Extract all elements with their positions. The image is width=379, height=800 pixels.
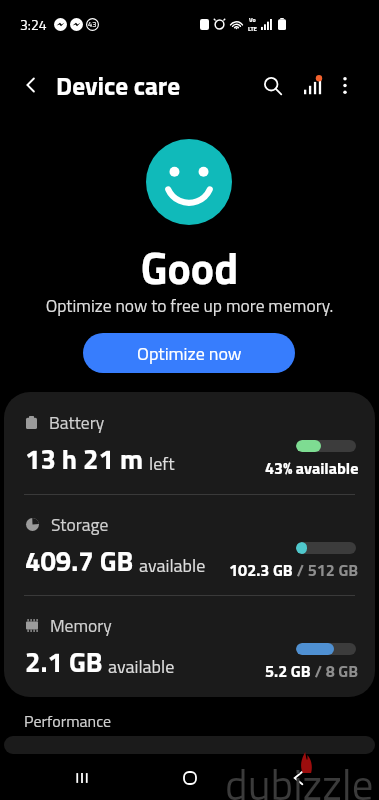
staticText: / 8 GB	[311, 659, 359, 684]
button[interactable]: Recent apps	[60, 756, 104, 800]
staticText: 3:24	[20, 14, 47, 35]
button[interactable]: Memory	[4, 595, 375, 696]
button[interactable]: Battery	[4, 392, 375, 493]
staticText: 409.7 GB	[25, 540, 134, 582]
staticText: 2.1 GB	[25, 641, 103, 683]
button[interactable]: More options	[328, 69, 361, 102]
button[interactable]: Navigate up	[18, 72, 44, 98]
staticText: 102.3 GB	[229, 558, 293, 583]
button[interactable]: Search	[256, 69, 289, 102]
staticText: Vo	[249, 15, 256, 24]
staticText: available	[139, 552, 206, 579]
button[interactable]: Optimize now	[83, 333, 295, 373]
staticText: Memory	[50, 612, 112, 639]
staticText: Optimize now to free up more memory.	[0, 292, 379, 319]
staticText: 43% available	[265, 456, 359, 481]
staticText: 13 h 21 m	[25, 438, 144, 480]
staticText: left	[149, 450, 175, 477]
button[interactable]: Storage	[4, 494, 375, 595]
button[interactable]: Back	[276, 756, 320, 800]
staticText: Device care	[56, 66, 181, 104]
staticText: dubizzle	[225, 751, 374, 800]
staticText: available	[108, 653, 175, 680]
staticText: / 512 GB	[293, 558, 359, 583]
staticText: Performance	[24, 709, 112, 733]
staticText: Storage	[51, 511, 109, 538]
staticText: LTE	[248, 24, 257, 33]
staticText: Good	[0, 234, 379, 301]
staticText: 43	[88, 19, 97, 30]
staticText: Optimize now	[137, 340, 242, 367]
button[interactable]: Home	[168, 756, 212, 800]
staticText: Battery	[49, 409, 105, 436]
button[interactable]: Usage statistics	[296, 69, 329, 102]
staticText: 5.2 GB	[265, 659, 311, 684]
